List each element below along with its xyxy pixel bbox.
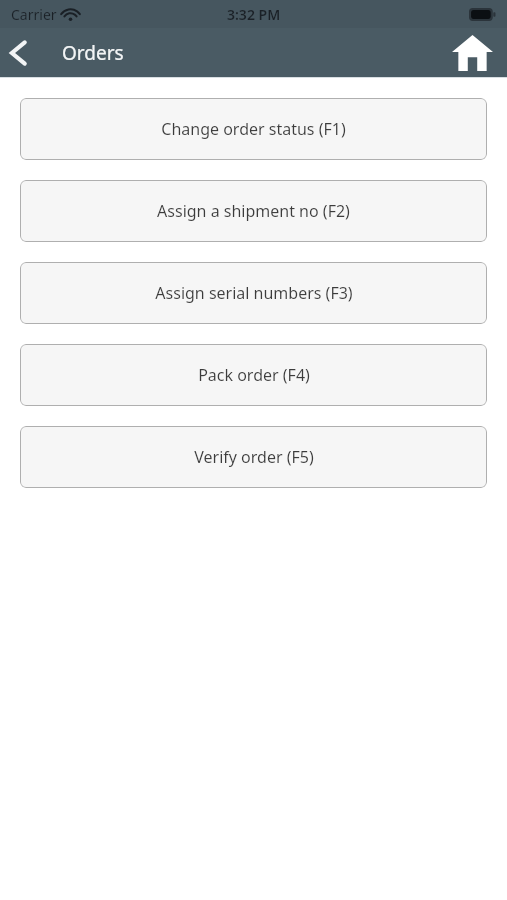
staticText: Change order status (F1) bbox=[161, 118, 346, 140]
button[interactable]: Verify order (F5) bbox=[20, 426, 487, 488]
button[interactable]: Pack order (F4) bbox=[20, 344, 487, 406]
button[interactable]: Home bbox=[438, 30, 507, 76]
staticText: Carrier bbox=[11, 5, 57, 24]
staticText: Assign a shipment no (F2) bbox=[157, 200, 350, 222]
button[interactable]: Assign a shipment no (F2) bbox=[20, 180, 487, 242]
staticText: 3:32 PM bbox=[227, 5, 281, 24]
staticText: Verify order (F5) bbox=[194, 446, 314, 468]
staticText: Assign serial numbers (F3) bbox=[155, 282, 353, 304]
button[interactable]: Assign serial numbers (F3) bbox=[20, 262, 487, 324]
staticText: Pack order (F4) bbox=[198, 364, 310, 386]
button[interactable]: Change order status (F1) bbox=[20, 98, 487, 160]
button[interactable]: Back bbox=[0, 33, 36, 73]
staticText: Orders bbox=[62, 40, 124, 66]
